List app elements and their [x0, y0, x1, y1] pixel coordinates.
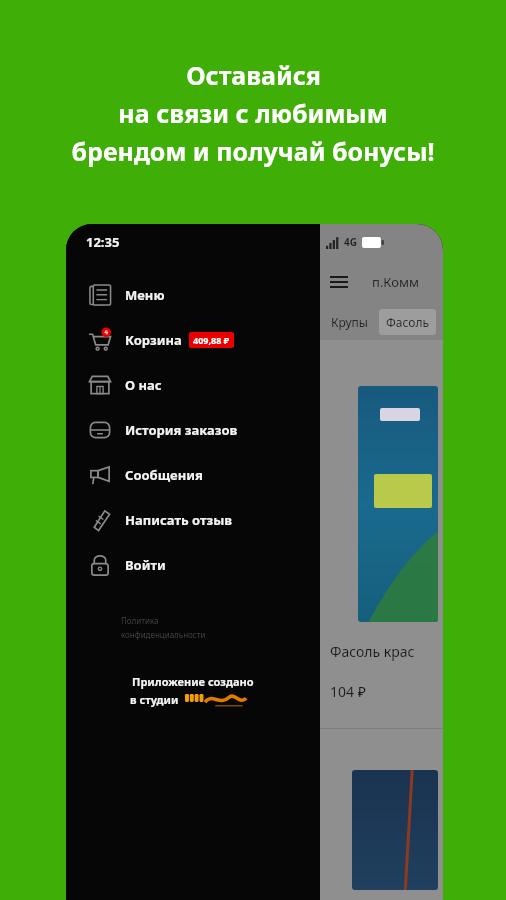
staticText: конфиденциальности	[121, 629, 206, 640]
button[interactable]: Политика	[121, 615, 206, 640]
staticText: Фасоль	[386, 314, 429, 330]
staticText: История заказов	[125, 421, 238, 439]
other: Написать отзыв	[88, 508, 112, 532]
button[interactable]: Меню	[66, 272, 320, 317]
staticText: 4G	[344, 235, 357, 249]
button[interactable]: Корзина	[66, 317, 320, 362]
staticText: Крупы	[331, 314, 368, 330]
other: История заказов	[88, 418, 112, 442]
staticText: Войти	[125, 556, 166, 574]
staticText: в студии	[130, 692, 185, 707]
staticText: Политика	[121, 615, 159, 626]
staticText: Фасоль крас	[330, 642, 415, 661]
button[interactable]: Фасоль	[379, 309, 436, 335]
staticText: О нас	[125, 376, 162, 394]
other: Сообщения	[88, 463, 112, 487]
staticText: Написать отзыв	[125, 511, 233, 529]
button[interactable]: История заказов	[66, 407, 320, 452]
other: Войти	[88, 553, 112, 577]
staticText: Меню	[125, 286, 165, 304]
staticText: Корзина	[125, 331, 182, 349]
staticText: 104 ₽	[330, 682, 366, 701]
staticText: п.Комм	[372, 273, 419, 291]
staticText: Оставайся	[186, 58, 321, 92]
button[interactable]: Написать отзыв	[66, 497, 320, 542]
staticText: на связи с любимым	[118, 96, 388, 130]
staticText: брендом и получай бонусы!	[71, 134, 435, 168]
button[interactable]: Открыть меню	[328, 271, 350, 293]
other: Корзина	[88, 328, 112, 352]
button[interactable]: Войти	[66, 542, 320, 587]
staticText: 409,88 ₽	[193, 334, 230, 346]
button[interactable]: О нас	[66, 362, 320, 407]
button[interactable]: Сообщения	[66, 452, 320, 497]
other: Меню	[88, 283, 112, 307]
other: О нас	[88, 373, 112, 397]
staticText: 12:35	[86, 233, 120, 251]
staticText: Приложение создано	[132, 674, 254, 689]
button[interactable]: Крупы	[327, 314, 372, 330]
staticText: Сообщения	[125, 466, 203, 484]
